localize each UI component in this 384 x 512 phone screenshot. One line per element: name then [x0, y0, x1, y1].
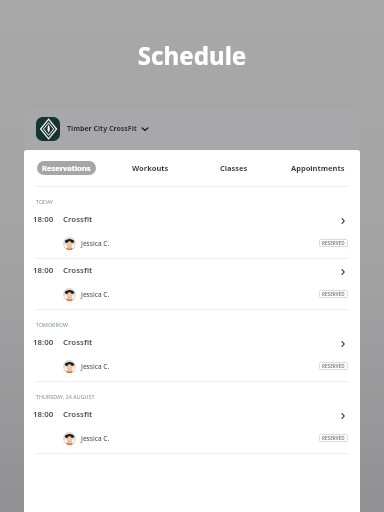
staticText: Crossfit [63, 214, 93, 225]
staticText: THURSDAY, 24 AUGUST [36, 393, 95, 400]
button[interactable]: Workouts [127, 161, 174, 175]
button[interactable]: RESERVED [319, 290, 348, 298]
staticText: Crossfit [63, 265, 93, 276]
staticText: Workouts [132, 163, 169, 173]
staticText: 18:00 [33, 337, 54, 348]
staticText: Jessica C. [81, 434, 110, 443]
staticText: Classes [220, 163, 248, 173]
button[interactable]: RESERVED [319, 434, 348, 442]
staticText: RESERVED [322, 435, 345, 441]
button[interactable]: Timber City CrossFit [24, 108, 360, 150]
staticText: Appointments [291, 163, 345, 173]
button[interactable]: 18:00 [24, 331, 360, 381]
button[interactable]: 18:00 [24, 403, 360, 453]
button[interactable]: RESERVED [319, 362, 348, 370]
staticText: Jessica C. [81, 362, 110, 371]
button[interactable]: 18:00 [24, 259, 360, 309]
button[interactable]: 18:00 [24, 208, 360, 258]
staticText: Timber City CrossFit [67, 124, 137, 134]
staticText: RESERVED [322, 363, 345, 369]
other: Open class details [340, 413, 346, 419]
staticText: 18:00 [33, 214, 54, 225]
staticText: TOMORROW [36, 321, 68, 328]
staticText: 18:00 [33, 409, 54, 420]
other: Switch gym [141, 125, 149, 133]
button[interactable]: Reservations [37, 161, 96, 175]
staticText: Jessica C. [81, 239, 110, 248]
staticText: Reservations [42, 163, 91, 173]
button[interactable]: Classes [215, 161, 253, 175]
staticText: 18:00 [33, 265, 54, 276]
staticText: RESERVED [322, 240, 345, 246]
button[interactable]: Appointments [286, 161, 350, 175]
other: Open class details [340, 218, 346, 224]
staticText: TODAY [36, 198, 54, 205]
other: Open class details [340, 269, 346, 275]
staticText: Schedule [0, 39, 384, 72]
staticText: RESERVED [322, 291, 345, 297]
staticText: Jessica C. [81, 290, 110, 299]
staticText: Crossfit [63, 409, 93, 420]
staticText: Crossfit [63, 337, 93, 348]
other: Open class details [340, 341, 346, 347]
button[interactable]: RESERVED [319, 239, 348, 247]
